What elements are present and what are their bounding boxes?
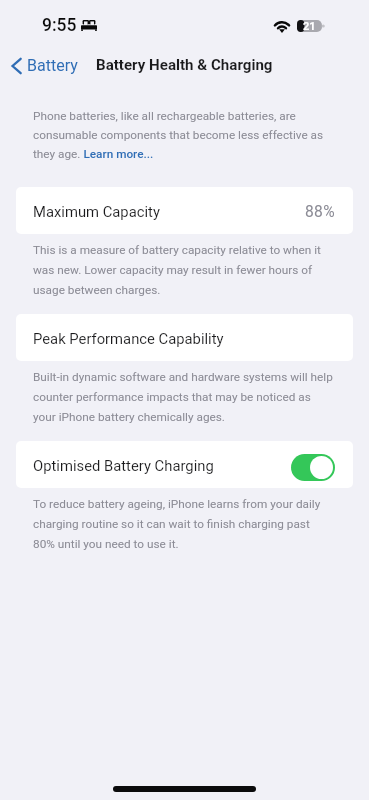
button[interactable]: Peak Performance Capability xyxy=(16,314,353,361)
staticText: 88% xyxy=(305,203,335,221)
staticText: Optimised Battery Charging xyxy=(33,457,214,474)
staticText: To reduce battery ageing, iPhone learns … xyxy=(33,497,333,550)
staticText: Phone batteries, like all rechargeable b… xyxy=(33,109,339,161)
staticText: Built-in dynamic software and hardware s… xyxy=(33,370,333,423)
staticText: 9:55 xyxy=(42,15,77,36)
staticText: Battery xyxy=(27,56,78,75)
staticText: Peak Performance Capability xyxy=(33,330,224,347)
staticText: Battery Health & Charging xyxy=(96,56,273,74)
button[interactable]: Optimised Battery Charging xyxy=(16,441,353,488)
staticText: 21 xyxy=(303,20,316,32)
staticText: This is a measure of battery capacity re… xyxy=(33,243,333,296)
button[interactable]: Optimised Battery Charging xyxy=(291,454,335,481)
button[interactable]: Battery xyxy=(11,52,78,79)
staticText: Maximum Capacity xyxy=(33,203,160,220)
button[interactable]: Maximum Capacity xyxy=(16,187,353,234)
